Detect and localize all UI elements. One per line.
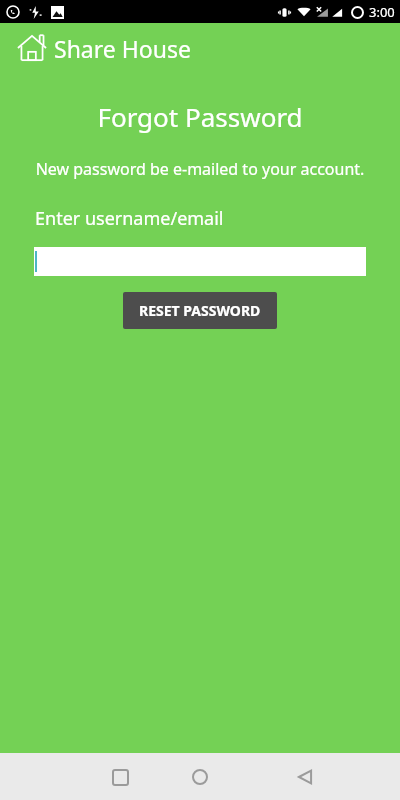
button[interactable] [34, 247, 366, 276]
staticText: RESET PASSWORD [139, 301, 261, 320]
button[interactable]: Recent apps [100, 757, 140, 797]
button[interactable]: Back [285, 757, 325, 797]
staticText: 3:00 [369, 3, 395, 21]
button[interactable]: Home [180, 757, 220, 797]
staticText: Enter username/email [35, 206, 224, 231]
staticText: Share House [54, 33, 191, 64]
staticText: New password be e-mailed to your account… [0, 158, 400, 180]
staticText: Forgot Password [0, 99, 400, 134]
button[interactable]: RESET PASSWORD [123, 292, 277, 329]
